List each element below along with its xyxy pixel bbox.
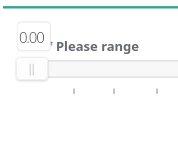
staticText: 0.00 (19, 27, 44, 47)
button[interactable]: Value 0.00 (14, 21, 51, 52)
staticText: Please range (56, 37, 139, 55)
button[interactable]: Slider handle (16, 57, 48, 80)
